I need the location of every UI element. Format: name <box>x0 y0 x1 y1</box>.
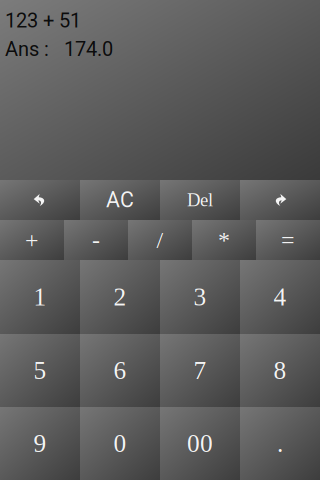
button[interactable]: 2 <box>80 260 160 334</box>
button[interactable]: 7 <box>160 334 240 407</box>
staticText: - <box>92 227 100 253</box>
button[interactable]: Redo <box>240 180 320 220</box>
staticText: Ans : 174.0 <box>5 37 113 61</box>
staticText: 123 + 51 <box>5 9 81 32</box>
button[interactable]: 1 <box>0 260 80 334</box>
staticText: AC <box>106 187 134 212</box>
staticText: * <box>218 227 230 253</box>
button[interactable]: + <box>0 220 64 260</box>
staticText: 2 <box>113 283 126 311</box>
button[interactable]: 9 <box>0 407 80 480</box>
button[interactable]: = <box>256 220 320 260</box>
staticText: 1 <box>33 283 46 311</box>
staticText: + <box>25 227 39 253</box>
staticText: 6 <box>113 356 126 385</box>
staticText: . <box>277 429 283 458</box>
button[interactable]: . <box>240 407 320 480</box>
staticText: 8 <box>273 356 286 385</box>
staticText: Del <box>187 190 213 210</box>
staticText: 9 <box>33 429 46 458</box>
staticText: 0 <box>113 429 126 458</box>
button[interactable]: Undo <box>0 180 80 220</box>
button[interactable]: 8 <box>240 334 320 407</box>
staticText: 00 <box>187 429 213 458</box>
button[interactable]: Del <box>160 180 240 220</box>
button[interactable]: 3 <box>160 260 240 334</box>
button[interactable]: 6 <box>80 334 160 407</box>
staticText: 3 <box>193 283 206 311</box>
button[interactable]: 5 <box>0 334 80 407</box>
button[interactable]: 4 <box>240 260 320 334</box>
staticText: 7 <box>193 356 206 385</box>
staticText: / <box>156 227 163 253</box>
button[interactable]: * <box>192 220 256 260</box>
staticText: 5 <box>33 356 46 385</box>
staticText: = <box>281 227 295 253</box>
button[interactable]: 00 <box>160 407 240 480</box>
button[interactable]: / <box>128 220 192 260</box>
button[interactable]: 0 <box>80 407 160 480</box>
staticText: 4 <box>273 283 286 311</box>
button[interactable]: - <box>64 220 128 260</box>
button[interactable]: AC <box>80 180 160 220</box>
